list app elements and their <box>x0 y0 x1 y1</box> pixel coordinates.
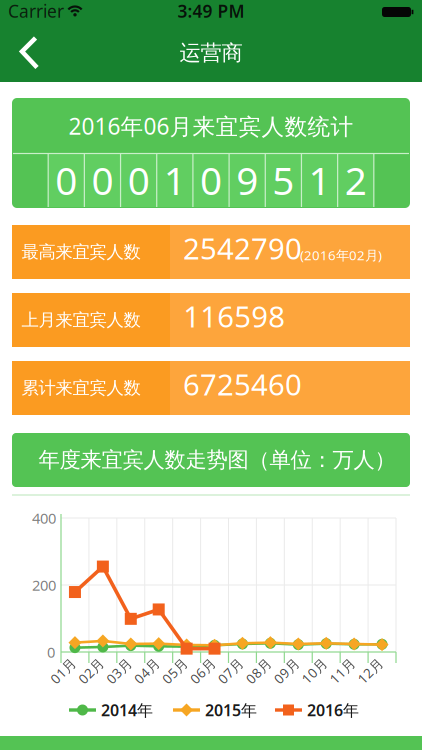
staticText: 0 <box>128 154 150 206</box>
staticText: 1 <box>308 154 330 206</box>
staticText: 116598 <box>183 296 285 335</box>
staticText: 01月 <box>48 662 77 680</box>
button[interactable]: 2014年 <box>69 699 153 721</box>
staticText: 08月 <box>244 662 273 680</box>
staticText: 2 <box>345 154 367 206</box>
staticText: 12月 <box>355 662 384 680</box>
staticText: 2015年 <box>205 699 257 721</box>
staticText: 2542790 <box>183 228 302 267</box>
staticText: 02月 <box>76 662 105 680</box>
staticText: 9 <box>236 154 258 206</box>
staticText: 09月 <box>272 662 301 680</box>
staticText: 0 <box>55 154 77 206</box>
staticText: 10月 <box>300 662 329 680</box>
staticText: 2014年 <box>101 699 153 721</box>
staticText: 06月 <box>188 662 217 680</box>
staticText: 5 <box>272 154 294 206</box>
staticText: 0 <box>91 154 113 206</box>
staticText: 05月 <box>160 662 189 680</box>
staticText: Carrier <box>8 0 64 22</box>
staticText: 400 <box>32 508 56 528</box>
staticText: 2016年 <box>307 699 359 721</box>
staticText: 最高来宜宾人数 <box>21 241 140 263</box>
staticText: 11月 <box>328 662 357 680</box>
staticText: 04月 <box>132 662 161 680</box>
staticText: 200 <box>32 575 56 595</box>
staticText: 2016年06月来宜宾人数统计 <box>68 111 353 141</box>
staticText: 上月来宜宾人数 <box>21 309 140 331</box>
staticText: 运营商 <box>179 40 242 66</box>
staticText: 累计来宜宾人数 <box>21 377 140 399</box>
button[interactable]: Back <box>7 30 51 74</box>
button[interactable]: 2016年 <box>275 699 359 721</box>
staticText: 0 <box>200 154 222 206</box>
staticText: 6725460 <box>183 364 302 403</box>
button[interactable]: 2015年 <box>173 699 257 721</box>
staticText: 年度来宜宾人数走势图（单位：万人） <box>38 447 395 473</box>
staticText: 03月 <box>104 662 133 680</box>
staticText: 3:49 PM <box>177 0 244 22</box>
staticText: 07月 <box>216 662 245 680</box>
staticText: (2016年02月) <box>300 246 382 264</box>
staticText: 1 <box>164 154 186 206</box>
staticText: 0 <box>47 642 55 662</box>
